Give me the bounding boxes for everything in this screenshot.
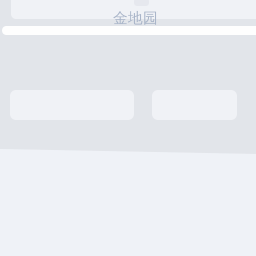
staticText: 金地园 [113,9,158,27]
button[interactable]: Search [0,0,256,256]
